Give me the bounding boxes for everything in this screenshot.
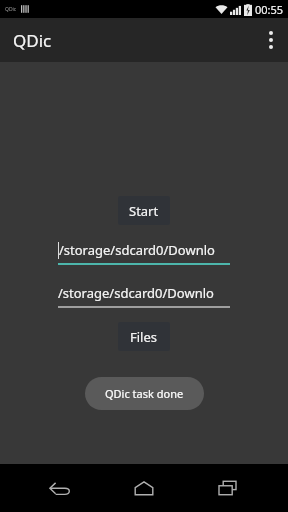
staticText: Files bbox=[130, 328, 158, 346]
button[interactable]: /storage/sdcard0/Downlo bbox=[58, 239, 230, 265]
staticText: QDic task done bbox=[105, 386, 184, 401]
button[interactable]: Recent apps bbox=[204, 464, 252, 512]
staticText: QDic bbox=[5, 6, 17, 13]
button[interactable]: More options bbox=[254, 18, 288, 62]
button[interactable]: Home bbox=[120, 464, 168, 512]
staticText: /storage/sdcard0/Downlo bbox=[59, 241, 215, 259]
staticText: 00:55 bbox=[255, 2, 284, 17]
button[interactable]: /storage/sdcard0/Downlo bbox=[58, 282, 230, 308]
staticText: Start bbox=[129, 202, 159, 220]
button[interactable]: QDic task done bbox=[85, 377, 204, 410]
button[interactable]: Start bbox=[118, 196, 170, 225]
staticText: /storage/sdcard0/Downlo bbox=[58, 284, 214, 302]
staticText: QDic bbox=[13, 29, 52, 52]
button[interactable]: Back bbox=[36, 464, 84, 512]
button[interactable]: Files bbox=[118, 322, 170, 351]
